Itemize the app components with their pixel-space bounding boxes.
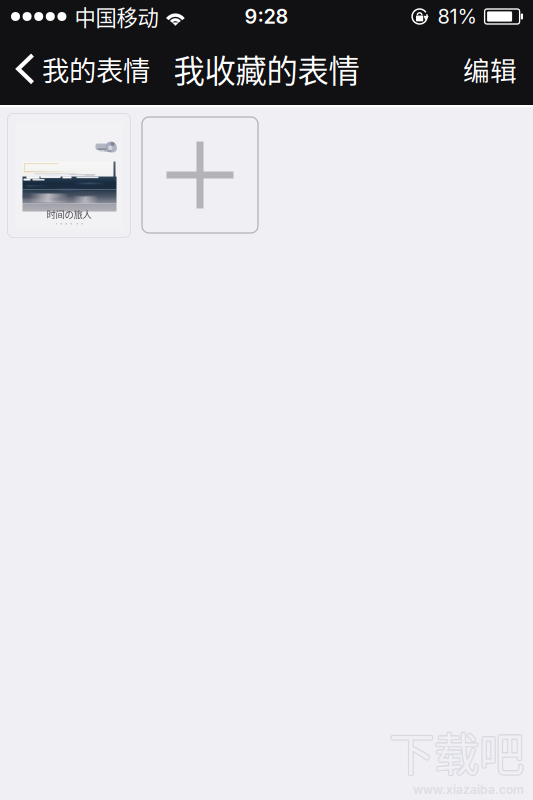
staticText: ···· ·· [53,220,84,228]
staticText: 下载吧 [390,719,525,784]
staticText: www.xiazaiba.com [413,782,524,797]
staticText: 时间の旅人 [46,207,91,221]
staticText: 下载吧 [389,719,524,784]
staticText: 下载吧 [388,720,523,785]
staticText: 下载吧 [390,720,525,785]
staticText: 我收藏的表情 [173,46,359,92]
staticText: 81% [438,4,477,29]
button[interactable]: 编辑 [447,33,533,105]
staticText: 中国移动 [74,1,158,32]
staticText: 下载吧 [389,720,524,785]
staticText: 下载吧 [388,719,523,784]
button[interactable]: 时间の旅人 [7,113,131,238]
staticText: 我的表情 [42,49,150,89]
staticText: 编辑 [463,50,517,88]
button[interactable]: 我的表情 [0,33,160,105]
staticText: 下载吧 [388,718,523,784]
staticText: 下载吧 [389,718,524,783]
staticText: 9:28 [244,4,288,29]
staticText: 下载吧 [390,718,525,784]
button[interactable]: Add sticker [142,117,258,233]
